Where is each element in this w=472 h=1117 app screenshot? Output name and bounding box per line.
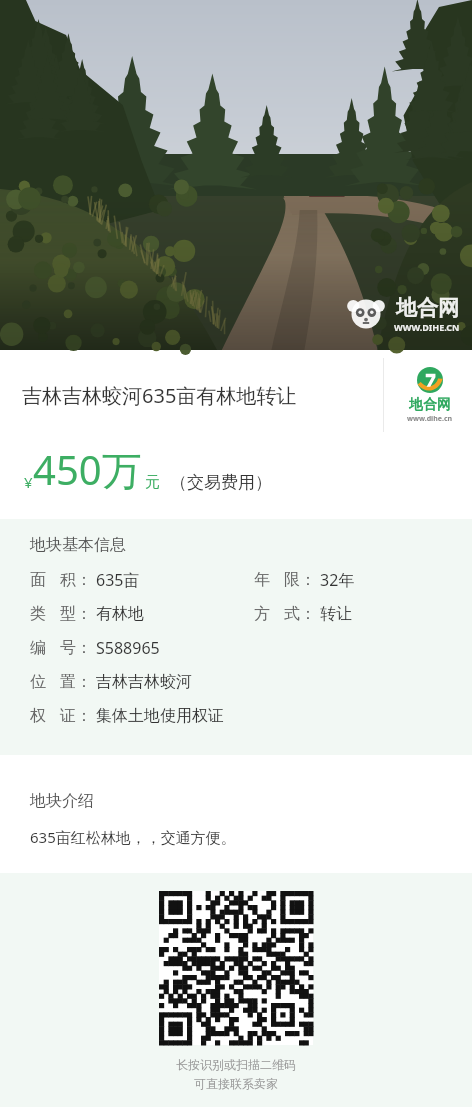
staticText: 积: [60, 570, 76, 590]
staticText: 450万: [33, 442, 142, 497]
staticText: 方: [254, 604, 270, 624]
staticText: 类: [30, 604, 46, 624]
button[interactable]: ¥: [24, 442, 472, 497]
staticText: ：: [76, 604, 92, 624]
staticText: 有林地: [96, 604, 144, 624]
staticText: 权: [30, 706, 46, 726]
staticText: 式: [284, 604, 300, 624]
staticText: 编: [30, 638, 46, 658]
staticText: 证: [60, 706, 76, 726]
staticText: ¥: [24, 472, 33, 492]
staticText: 长按识别或扫描二维码: [176, 1057, 296, 1072]
staticText: （交易费用）: [170, 472, 272, 493]
staticText: 面: [30, 570, 46, 590]
staticText: 年: [254, 570, 270, 590]
button[interactable]: 二维码: [159, 891, 313, 1045]
staticText: 地块基本信息: [30, 535, 126, 555]
staticText: 地合网: [409, 396, 451, 414]
staticText: 号: [60, 638, 76, 658]
staticText: 可直接联系卖家: [194, 1076, 278, 1091]
staticText: ：: [76, 706, 92, 726]
staticText: 位: [30, 672, 46, 692]
staticText: 元: [145, 473, 160, 492]
staticText: ：: [76, 570, 92, 590]
staticText: ：: [76, 672, 92, 692]
staticText: 635亩红松林地，，交通方便。: [30, 827, 236, 847]
button[interactable]: 吉林吉林蛟河635亩有林地转让: [0, 350, 472, 440]
staticText: ：: [300, 570, 316, 590]
staticText: S588965: [96, 637, 160, 659]
staticText: www.dihe.cn: [407, 414, 453, 424]
staticText: 集体土地使用权证: [96, 706, 224, 726]
button[interactable]: 地合网: [0, 0, 472, 350]
staticText: WWW.DIHE.CN: [394, 321, 460, 333]
staticText: 635亩: [96, 569, 140, 591]
staticText: 32年: [320, 569, 355, 591]
staticText: ：: [76, 638, 92, 658]
staticText: 吉林吉林蛟河635亩有林地转让: [22, 382, 297, 409]
staticText: 型: [60, 604, 76, 624]
staticText: 转让: [320, 604, 352, 624]
staticText: 地块介绍: [30, 791, 94, 811]
staticText: ：: [300, 604, 316, 624]
staticText: 吉林吉林蛟河: [96, 672, 192, 692]
staticText: 限: [284, 570, 300, 590]
staticText: 地合网: [396, 295, 459, 321]
staticText: 置: [60, 672, 76, 692]
